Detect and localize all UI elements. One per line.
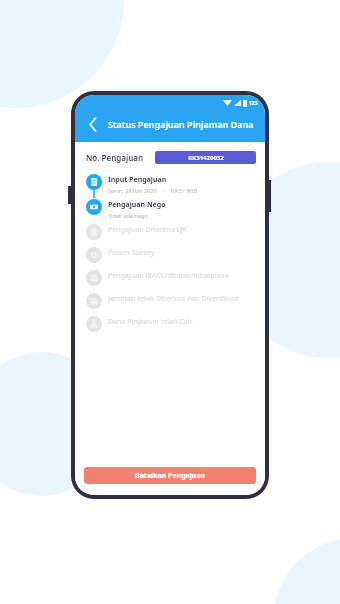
staticText: Proses Survey [108, 248, 155, 258]
staticText: Jaminan telah Diterima dan Diverifikasi [108, 294, 239, 304]
staticText: KK31420032 [188, 154, 224, 162]
button[interactable]: KK31420032 [155, 151, 256, 164]
staticText: Dana Pinjaman telah Cair [108, 317, 193, 327]
staticText: Pengajuan Nego [108, 200, 166, 210]
staticText: No. Pengajuan [86, 152, 144, 163]
staticText: Status Pengajuan Pinjaman Dana [108, 118, 254, 130]
staticText: Senin, 28 Juni 2020 - 09:51 WIB [108, 187, 198, 194]
staticText: Input Pengajuan [108, 175, 167, 185]
staticText: Batalkan Pengajuan [135, 471, 206, 481]
staticText: Tidak ada nego [108, 212, 148, 219]
staticText: Pengajuan Diterima LJK [108, 225, 187, 235]
staticText: Pengajuan diACC/ditolak/dibatalkan [108, 271, 229, 281]
button[interactable]: Batalkan Pengajuan [84, 467, 256, 484]
staticText: 123 [249, 100, 258, 107]
button[interactable]: Back [83, 114, 103, 134]
